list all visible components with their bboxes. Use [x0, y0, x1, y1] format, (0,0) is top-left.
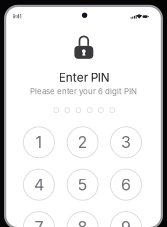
- staticText: 1: [35, 133, 42, 152]
- staticText: 9: [121, 217, 131, 227]
- button[interactable]: 8: [67, 212, 98, 227]
- button[interactable]: 5: [67, 169, 98, 200]
- staticText: 3: [121, 133, 131, 152]
- staticText: 7: [34, 217, 43, 227]
- staticText: 4: [34, 175, 44, 194]
- staticText: Please enter your 6 digit PIN: [30, 86, 137, 96]
- staticText: 9:41: [12, 13, 21, 19]
- staticText: 8: [78, 217, 88, 227]
- button[interactable]: 9: [110, 212, 141, 227]
- button[interactable]: 7: [23, 212, 54, 227]
- button[interactable]: 4: [23, 169, 54, 200]
- button[interactable]: 6: [110, 169, 141, 200]
- button[interactable]: 1: [23, 127, 54, 158]
- button[interactable]: 2: [67, 127, 98, 158]
- button[interactable]: 3: [110, 127, 141, 158]
- staticText: 2: [78, 133, 88, 152]
- staticText: 6: [121, 175, 131, 194]
- staticText: Enter PIN: [59, 70, 110, 85]
- staticText: 5: [78, 175, 88, 194]
